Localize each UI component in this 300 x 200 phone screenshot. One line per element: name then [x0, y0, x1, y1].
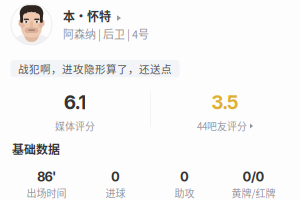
button[interactable]: 6.1	[0, 91, 150, 133]
staticText: 助攻	[174, 186, 194, 200]
staticText: 3.5	[211, 91, 239, 114]
staticText: 阿森纳 | 后卫 | 4号	[63, 26, 149, 42]
staticText: 44吧友评分	[197, 119, 247, 133]
button[interactable]: 3.5	[150, 91, 300, 133]
staticText: 0	[180, 169, 189, 185]
staticText: 进球	[105, 186, 125, 200]
staticText: 86'	[37, 169, 56, 185]
staticText: 基础数据	[12, 140, 60, 157]
staticText: 媒体评分	[55, 119, 95, 133]
staticText: 0	[111, 169, 120, 185]
staticText: 本·怀特	[63, 7, 111, 25]
button[interactable]: 本·怀特	[11, 4, 300, 45]
staticText: 6.1	[64, 91, 86, 114]
staticText: 0/0	[242, 169, 265, 185]
staticText: 黄牌/红牌	[231, 186, 275, 200]
staticText: 战犯啊，进攻隐形算了，还送点	[18, 61, 172, 76]
staticText: 出场时间	[26, 186, 66, 200]
